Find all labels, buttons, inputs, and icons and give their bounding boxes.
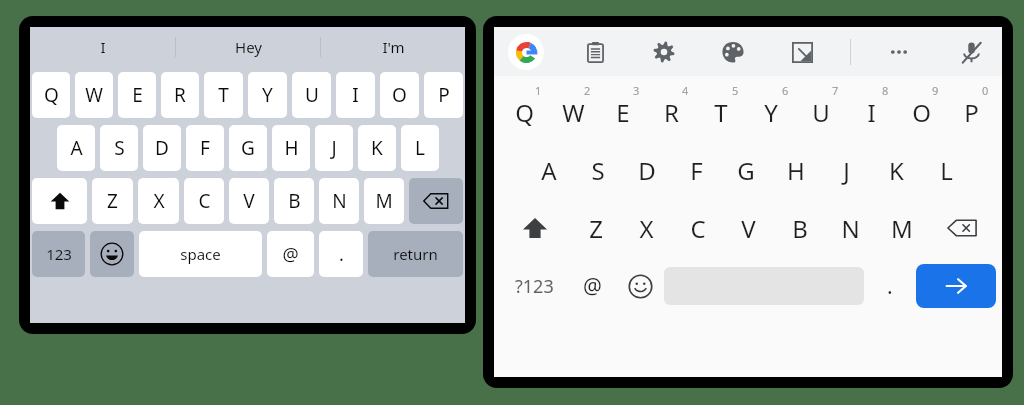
button[interactable]: D [143, 125, 181, 171]
button[interactable]: ?123 [500, 258, 568, 314]
button[interactable]: space [139, 231, 262, 277]
button[interactable]: N [825, 202, 876, 254]
staticText: G [737, 154, 755, 187]
button[interactable]: Backspace [409, 178, 463, 224]
button[interactable]: J [821, 144, 871, 196]
button[interactable]: S [100, 125, 138, 171]
staticText: Y [262, 82, 273, 108]
button[interactable]: Resize [785, 35, 819, 69]
button[interactable]: C [184, 178, 224, 224]
button[interactable]: Y [248, 72, 287, 118]
staticText: 1 [535, 83, 542, 98]
button[interactable]: N [319, 178, 359, 224]
staticText: O [912, 96, 931, 129]
button[interactable]: Z [92, 178, 133, 224]
staticText: H [787, 154, 805, 187]
staticText: D [155, 135, 169, 161]
staticText: . [339, 242, 344, 267]
staticText: F [690, 154, 703, 187]
button[interactable]: 123 [32, 231, 85, 277]
button[interactable]: I [336, 72, 375, 118]
button[interactable]: K [358, 125, 396, 171]
button[interactable]: Hey [176, 27, 320, 67]
staticText: G [241, 135, 255, 161]
button[interactable]: Clipboard [578, 35, 612, 69]
button[interactable]: S [573, 144, 622, 196]
staticText: 6 [782, 83, 789, 98]
staticText: Q [44, 82, 59, 108]
button[interactable]: U [796, 86, 846, 138]
button[interactable]: L [921, 144, 971, 196]
button[interactable]: Y [746, 86, 796, 138]
button[interactable]: Shift [32, 178, 87, 224]
button[interactable]: Q [500, 86, 549, 138]
button[interactable]: Enter [916, 264, 996, 308]
button[interactable]: X [138, 178, 179, 224]
button[interactable]: E [118, 72, 156, 118]
staticText: T [714, 96, 728, 129]
button[interactable]: W [75, 72, 113, 118]
button[interactable]: H [272, 125, 310, 171]
button[interactable]: L [401, 125, 439, 171]
button[interactable]: . [319, 231, 363, 277]
button[interactable]: T [696, 86, 746, 138]
button[interactable]: Z [570, 202, 621, 254]
button[interactable]: Shift [500, 202, 570, 254]
button[interactable]: C [672, 202, 723, 254]
button[interactable]: R [647, 86, 696, 138]
button[interactable]: Google search [508, 34, 544, 70]
button[interactable]: T [204, 72, 243, 118]
button[interactable]: I'm [321, 27, 465, 67]
button[interactable]: P [424, 72, 463, 118]
staticText: 3 [633, 83, 640, 98]
button[interactable]: M [876, 202, 927, 254]
button[interactable]: W [549, 86, 598, 138]
staticText: R [174, 82, 186, 108]
staticText: N [332, 188, 347, 214]
button[interactable]: . [864, 258, 916, 314]
button[interactable]: A [57, 125, 95, 171]
button[interactable]: I [30, 27, 175, 67]
button[interactable]: I [846, 86, 896, 138]
staticText: C [690, 212, 706, 245]
staticText: W [562, 96, 585, 129]
button[interactable]: Themes [716, 35, 750, 69]
button[interactable]: Settings [647, 35, 681, 69]
button[interactable]: @ [267, 231, 314, 277]
button[interactable]: Emoji [616, 258, 664, 314]
staticText: E [616, 96, 630, 129]
button[interactable]: F [671, 144, 721, 196]
button[interactable]: E [598, 86, 647, 138]
button[interactable]: G [721, 144, 771, 196]
staticText: ?123 [515, 274, 554, 299]
button[interactable]: B [774, 202, 825, 254]
button[interactable]: More options [882, 35, 916, 69]
button[interactable]: U [292, 72, 331, 118]
button[interactable]: A [524, 144, 573, 196]
button[interactable]: M [364, 178, 404, 224]
button[interactable]: @ [568, 258, 616, 314]
button[interactable]: X [621, 202, 672, 254]
button[interactable]: Backspace [927, 202, 996, 254]
button[interactable]: Emoji [90, 231, 134, 277]
button[interactable]: return [368, 231, 463, 277]
staticText: N [841, 212, 860, 245]
button[interactable]: Q [32, 72, 70, 118]
button[interactable]: D [622, 144, 671, 196]
button[interactable]: K [871, 144, 921, 196]
button[interactable]: G [229, 125, 267, 171]
button[interactable]: P [946, 86, 996, 138]
button[interactable]: O [380, 72, 419, 118]
staticText: Q [515, 96, 534, 129]
button[interactable]: H [771, 144, 821, 196]
staticText: @ [583, 272, 602, 301]
button[interactable]: J [315, 125, 353, 171]
button[interactable]: R [161, 72, 199, 118]
button[interactable]: F [186, 125, 224, 171]
button[interactable]: V [723, 202, 774, 254]
button[interactable]: B [274, 178, 314, 224]
button[interactable]: Voice input off [954, 35, 988, 69]
button[interactable]: O [896, 86, 946, 138]
button[interactable]: V [229, 178, 269, 224]
